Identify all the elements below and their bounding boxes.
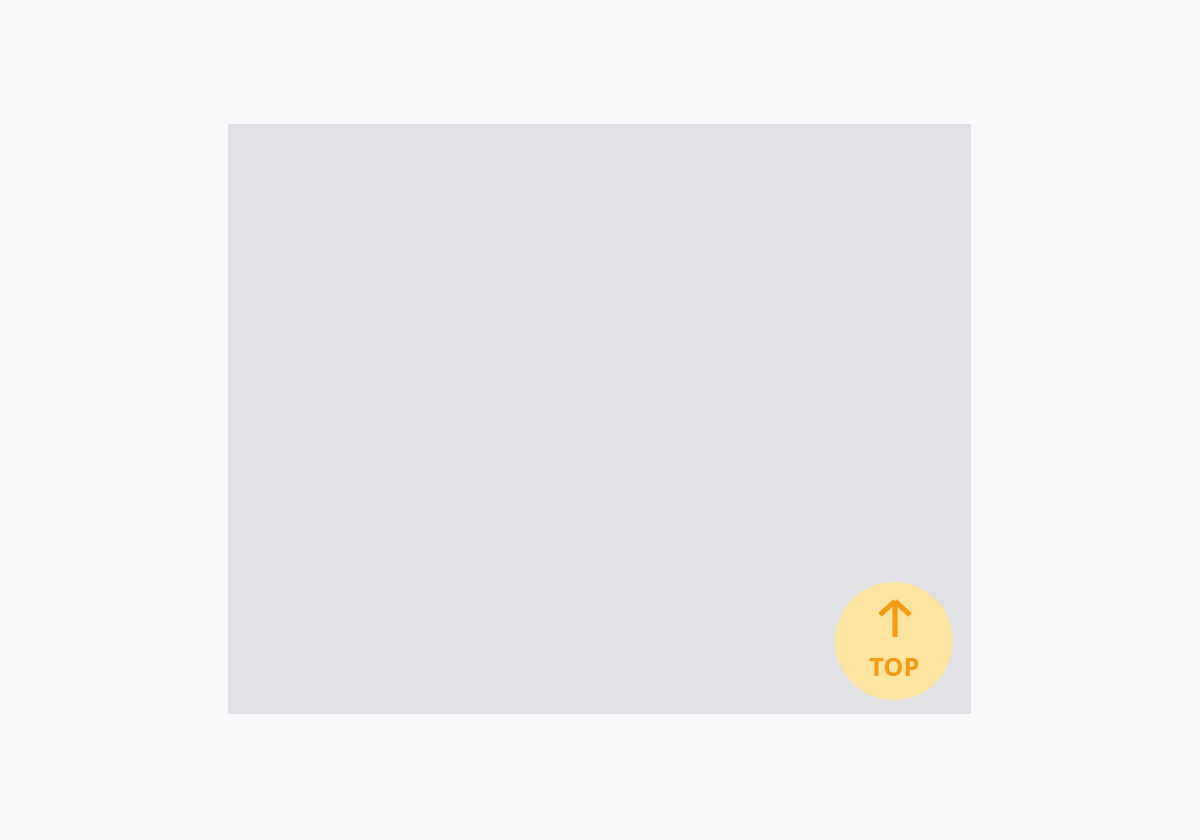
staticText: TOP (869, 649, 920, 683)
button[interactable]: Scroll to top (835, 582, 953, 700)
